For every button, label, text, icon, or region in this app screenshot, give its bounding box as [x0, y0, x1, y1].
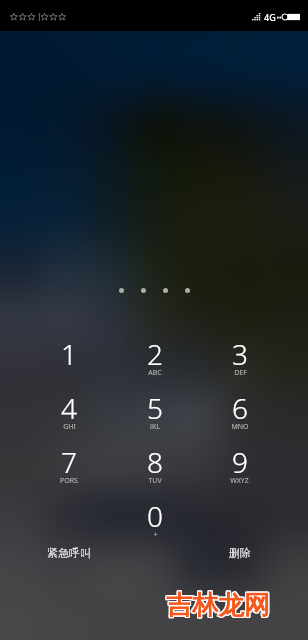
staticText: +: [153, 530, 158, 537]
button[interactable]: 紧急呼叫: [26, 536, 112, 570]
staticText: 8: [147, 443, 163, 481]
staticText: 4G: [264, 11, 276, 23]
button[interactable]: 5: [112, 380, 197, 434]
staticText: ABC: [148, 368, 162, 375]
staticText: 吉林龙网: [166, 589, 270, 622]
staticText: 2: [147, 335, 163, 373]
staticText: JKL: [150, 422, 160, 429]
button[interactable]: 2: [112, 326, 197, 380]
staticText: 吉林龙网: [165, 588, 269, 621]
button[interactable]: 0: [112, 488, 197, 542]
button[interactable]: 4: [26, 380, 112, 434]
staticText: GHI: [63, 422, 76, 429]
staticText: 7: [61, 443, 77, 481]
staticText: 吉林龙网: [166, 590, 270, 623]
staticText: 吉林龙网: [167, 588, 271, 621]
staticText: 0: [147, 497, 163, 535]
button[interactable]: 删除: [197, 536, 282, 570]
staticText: PQRS: [60, 476, 78, 483]
staticText: 吉林龙网: [166, 588, 270, 621]
staticText: 5: [147, 389, 163, 427]
staticText: 删除: [229, 546, 251, 560]
button[interactable]: 1: [26, 326, 112, 380]
button[interactable]: 3: [197, 326, 282, 380]
button[interactable]: 6: [197, 380, 282, 434]
button[interactable]: 9: [197, 434, 282, 488]
staticText: DEF: [234, 368, 247, 375]
staticText: 4: [61, 389, 77, 427]
staticText: 吉林龙网: [165, 589, 269, 622]
staticText: 紧急呼叫: [47, 546, 91, 560]
staticText: 9: [232, 443, 248, 481]
staticText: WXYZ: [230, 476, 249, 483]
staticText: 吉林龙网: [165, 590, 269, 623]
staticText: 吉林龙网: [167, 590, 271, 623]
staticText: 吉林龙网: [167, 589, 271, 622]
button[interactable]: 8: [112, 434, 197, 488]
staticText: 6: [232, 389, 248, 427]
staticText: TUV: [148, 476, 162, 483]
button[interactable]: 7: [26, 434, 112, 488]
staticText: 3: [232, 335, 248, 373]
staticText: 1: [61, 335, 77, 373]
staticText: MNO: [231, 422, 249, 429]
